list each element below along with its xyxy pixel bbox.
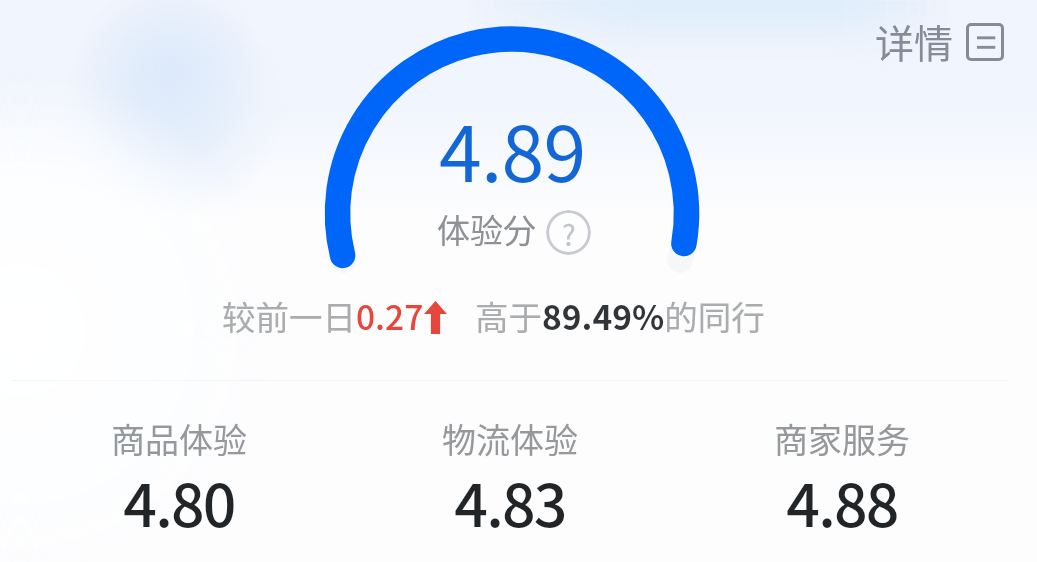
button[interactable]: 物流体验: [344, 406, 676, 556]
staticText: 4.89: [439, 93, 586, 204]
staticText: 商家服务: [774, 414, 910, 463]
staticText: 体验分: [437, 205, 536, 253]
staticText: 4.88: [786, 459, 898, 544]
staticText: 高于89.49%的同行: [475, 291, 765, 340]
staticText: 物流体验: [442, 414, 578, 463]
button[interactable]: 商品体验: [13, 406, 344, 556]
button[interactable]: 详情: [871, 10, 1008, 72]
staticText: 商品体验: [111, 414, 247, 463]
staticText: ?: [562, 212, 576, 254]
staticText: 4.83: [454, 459, 566, 544]
button[interactable]: 体验分说明: [546, 210, 591, 255]
button[interactable]: 商家服务: [676, 406, 1008, 556]
staticText: 4.80: [123, 459, 235, 544]
staticText: 较前一日0.27: [222, 291, 424, 340]
staticText: 详情: [875, 13, 954, 69]
